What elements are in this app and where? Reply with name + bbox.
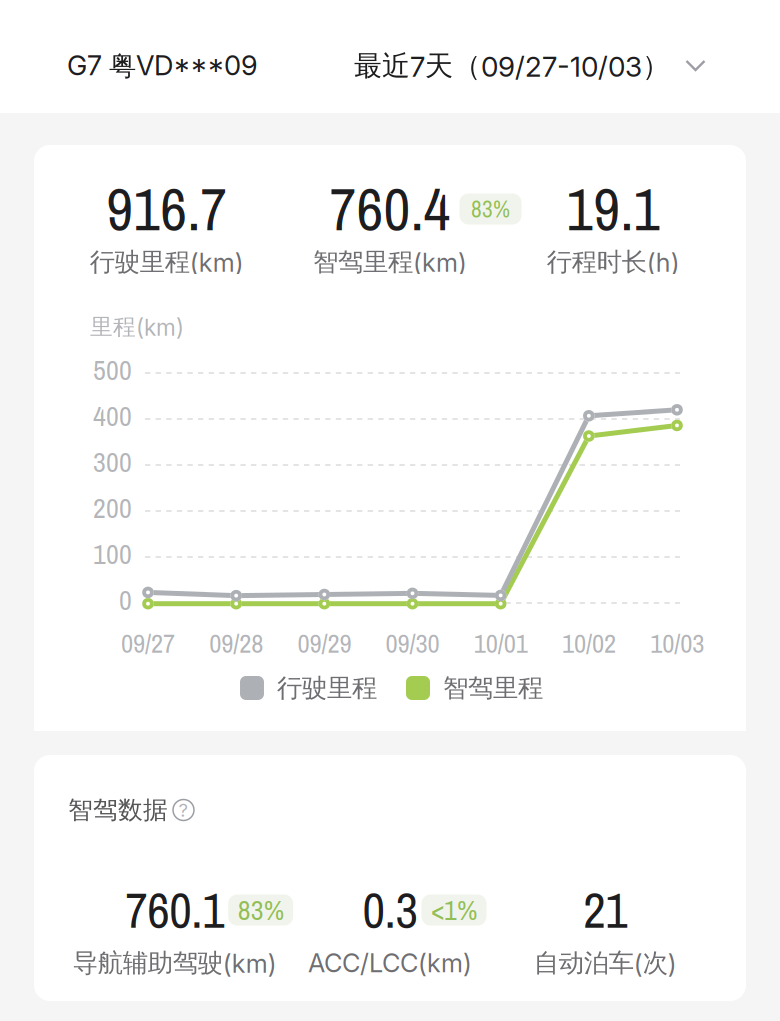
button[interactable]: 最近7天（09/27-10/03） [354, 51, 707, 81]
staticText: <1% [431, 891, 477, 929]
staticText: 智驾里程(km) [313, 246, 467, 278]
staticText: 200 [93, 489, 132, 527]
staticText: 行驶里程 [277, 672, 377, 704]
staticText: 10/03 [650, 625, 704, 661]
staticText: 里程(km) [90, 313, 184, 341]
staticText: 760.4 [329, 169, 450, 248]
staticText: 83% [238, 891, 284, 929]
staticText: 83% [471, 193, 510, 225]
staticText: 916.7 [106, 169, 227, 248]
staticText: 09/28 [209, 625, 263, 661]
staticText: 0.3 [362, 877, 417, 943]
staticText: 760.1 [125, 877, 224, 943]
staticText: 10/02 [562, 625, 616, 661]
staticText: 100 [93, 535, 132, 573]
staticText: 智驾里程 [443, 672, 543, 704]
staticText: 21 [583, 877, 627, 943]
staticText: 19.1 [566, 169, 660, 248]
staticText: 智驾数据 [68, 794, 168, 826]
staticText: 400 [93, 397, 132, 435]
staticText: 300 [93, 443, 132, 481]
staticText: 自动泊车(次) [534, 947, 677, 979]
staticText: 0 [119, 581, 132, 619]
staticText: 500 [93, 351, 132, 389]
staticText: 行程时长(h) [547, 246, 680, 278]
staticText: ? [178, 799, 188, 821]
staticText: 09/27 [121, 625, 175, 661]
staticText: 09/30 [386, 625, 440, 661]
staticText: 09/29 [297, 625, 351, 661]
staticText: 最近7天（09/27-10/03） [354, 48, 670, 84]
staticText: ACC/LCC(km) [308, 948, 472, 978]
staticText: 导航辅助驾驶(km) [73, 947, 277, 979]
staticText: G7 粤VD***09 [67, 49, 258, 83]
staticText: 行驶里程(km) [90, 246, 244, 278]
button[interactable]: G7 粤VD***09 [67, 51, 258, 81]
staticText: 10/01 [474, 625, 528, 661]
